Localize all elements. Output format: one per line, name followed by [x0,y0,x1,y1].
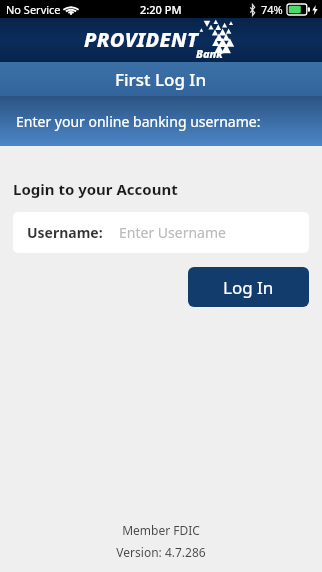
staticText: Version: 4.7.286 [116,544,206,560]
staticText: Log In [223,276,274,299]
staticText: Enter your online banking username: [16,112,261,131]
staticText: No Service [6,2,61,17]
button[interactable]: Log In [188,267,309,307]
staticText: Enter Username [119,223,226,242]
staticText: 74% [261,2,283,17]
staticText: First Log In [115,68,207,91]
staticText: 2:20 PM [140,2,182,17]
staticText: Member FDIC [122,522,200,538]
staticText: Username: [27,223,103,242]
staticText: PROVIDENT [84,26,199,53]
staticText: Bank [196,46,223,61]
button[interactable]: Username: [13,212,309,253]
staticText: Login to your Account [13,179,178,199]
